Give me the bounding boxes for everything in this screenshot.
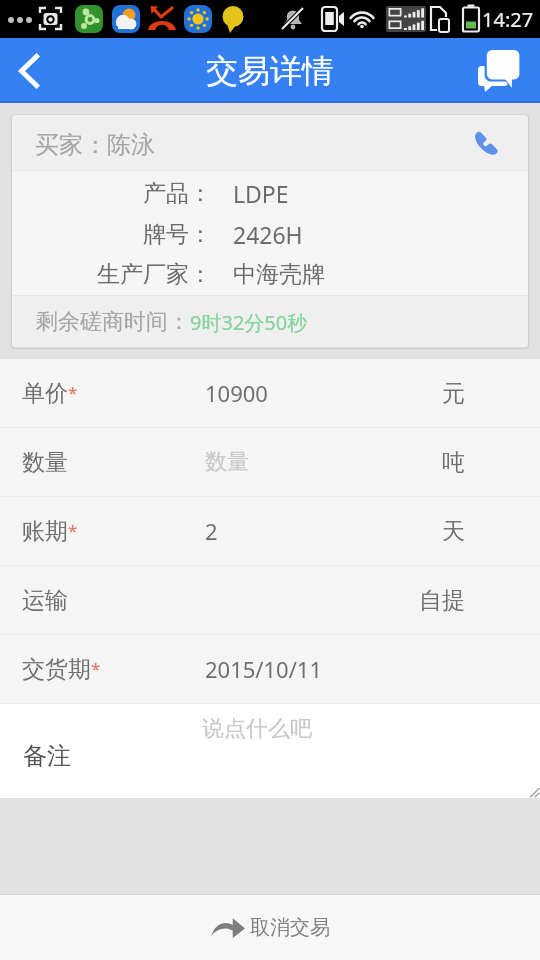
staticText: 天 [442, 517, 465, 546]
button[interactable]: Back [0, 38, 58, 103]
staticText: 产品： [143, 179, 212, 208]
staticText: 交货期 [22, 655, 91, 684]
staticText: 中海壳牌 [233, 260, 325, 289]
staticText: * [68, 381, 78, 404]
staticText: 9时32分50秒 [190, 309, 308, 336]
staticText: 2 [205, 516, 218, 546]
staticText: 备注 [23, 741, 71, 771]
button[interactable]: 数量 [0, 428, 540, 497]
staticText: 元 [442, 379, 465, 408]
staticText: * [68, 519, 78, 542]
button[interactable]: Messages [460, 38, 540, 103]
staticText: 说点什么吧 [202, 715, 312, 743]
staticText: 2426H [233, 219, 303, 250]
staticText: 取消交易 [250, 915, 330, 940]
staticText: 牌号： [143, 220, 212, 249]
button[interactable]: Call buyer [466, 123, 506, 163]
button[interactable]: 取消交易 [0, 895, 540, 960]
staticText: 运输 [22, 586, 68, 615]
staticText: LDPE [233, 178, 289, 209]
staticText: * [91, 657, 101, 680]
staticText: 吨 [442, 448, 465, 477]
staticText: 买家：陈泳 [35, 130, 155, 160]
button[interactable]: 单价 [0, 359, 540, 428]
staticText: 数量 [22, 448, 68, 477]
staticText: 2015/10/11 [205, 654, 323, 684]
staticText: 单价 [22, 379, 68, 408]
staticText: 剩余磋商时间： [36, 308, 190, 336]
button[interactable]: 账期 [0, 497, 540, 566]
staticText: 14:27 [482, 6, 534, 33]
staticText: 生产厂家： [97, 260, 212, 289]
staticText: 账期 [22, 517, 68, 546]
staticText: 数量 [205, 448, 249, 476]
button[interactable]: 运输 [0, 566, 540, 635]
staticText: 交易详情 [206, 51, 334, 91]
button[interactable]: 备注 [0, 704, 540, 798]
button[interactable]: 交货期 [0, 635, 540, 704]
staticText: 自提 [419, 586, 465, 615]
staticText: 10900 [205, 378, 268, 408]
